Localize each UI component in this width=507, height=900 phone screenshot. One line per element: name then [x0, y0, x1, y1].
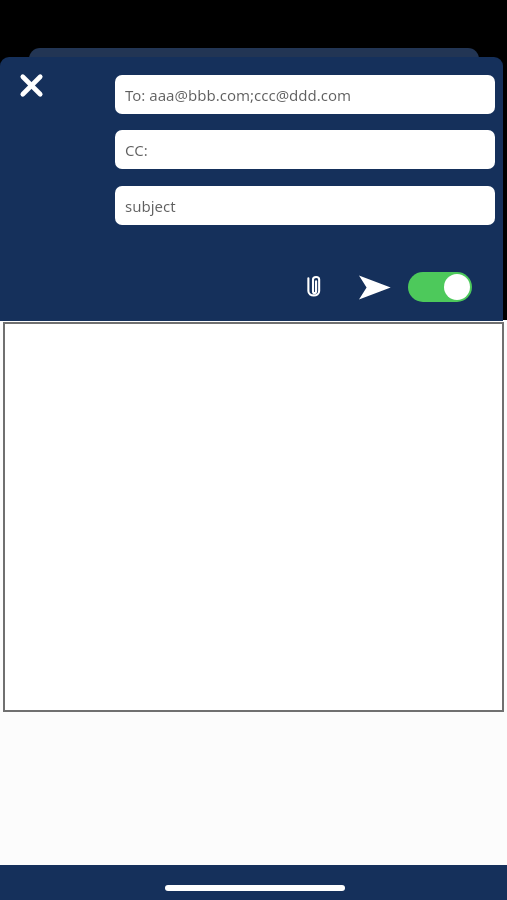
button[interactable]: Close: [7, 61, 55, 109]
button[interactable]: subject: [115, 186, 495, 225]
button[interactable]: To: aaa@bbb.com;ccc@ddd.com: [115, 75, 495, 114]
button[interactable]: Toggle rich text: [408, 272, 472, 302]
staticText: subject: [125, 196, 176, 216]
staticText: CC:: [125, 140, 148, 160]
button[interactable]: Attach file: [289, 263, 337, 311]
button[interactable]: [3, 322, 504, 712]
staticText: To: aaa@bbb.com;ccc@ddd.com: [125, 85, 352, 105]
button[interactable]: CC:: [115, 130, 495, 169]
button[interactable]: Send: [350, 263, 398, 311]
